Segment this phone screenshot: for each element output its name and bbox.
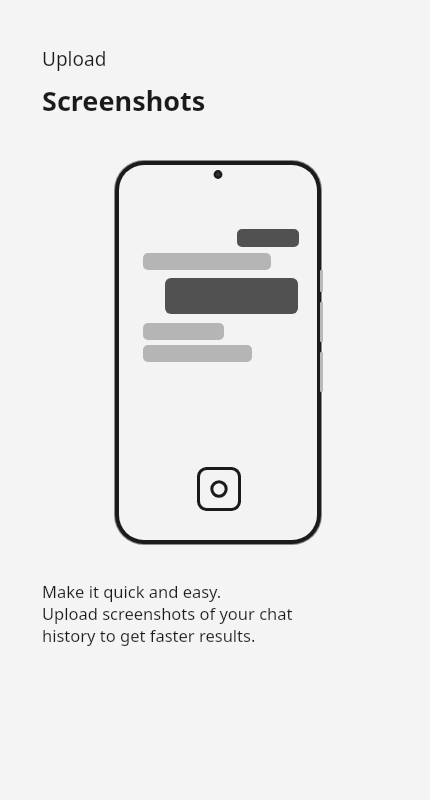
- staticText: Screenshots: [42, 82, 206, 119]
- staticText: history to get faster results.: [42, 624, 256, 646]
- staticText: Upload screenshots of your chat: [42, 602, 293, 624]
- staticText: Upload: [42, 46, 107, 72]
- staticText: Make it quick and easy.: [42, 580, 222, 602]
- button[interactable]: Scan screenshot: [197, 467, 241, 511]
